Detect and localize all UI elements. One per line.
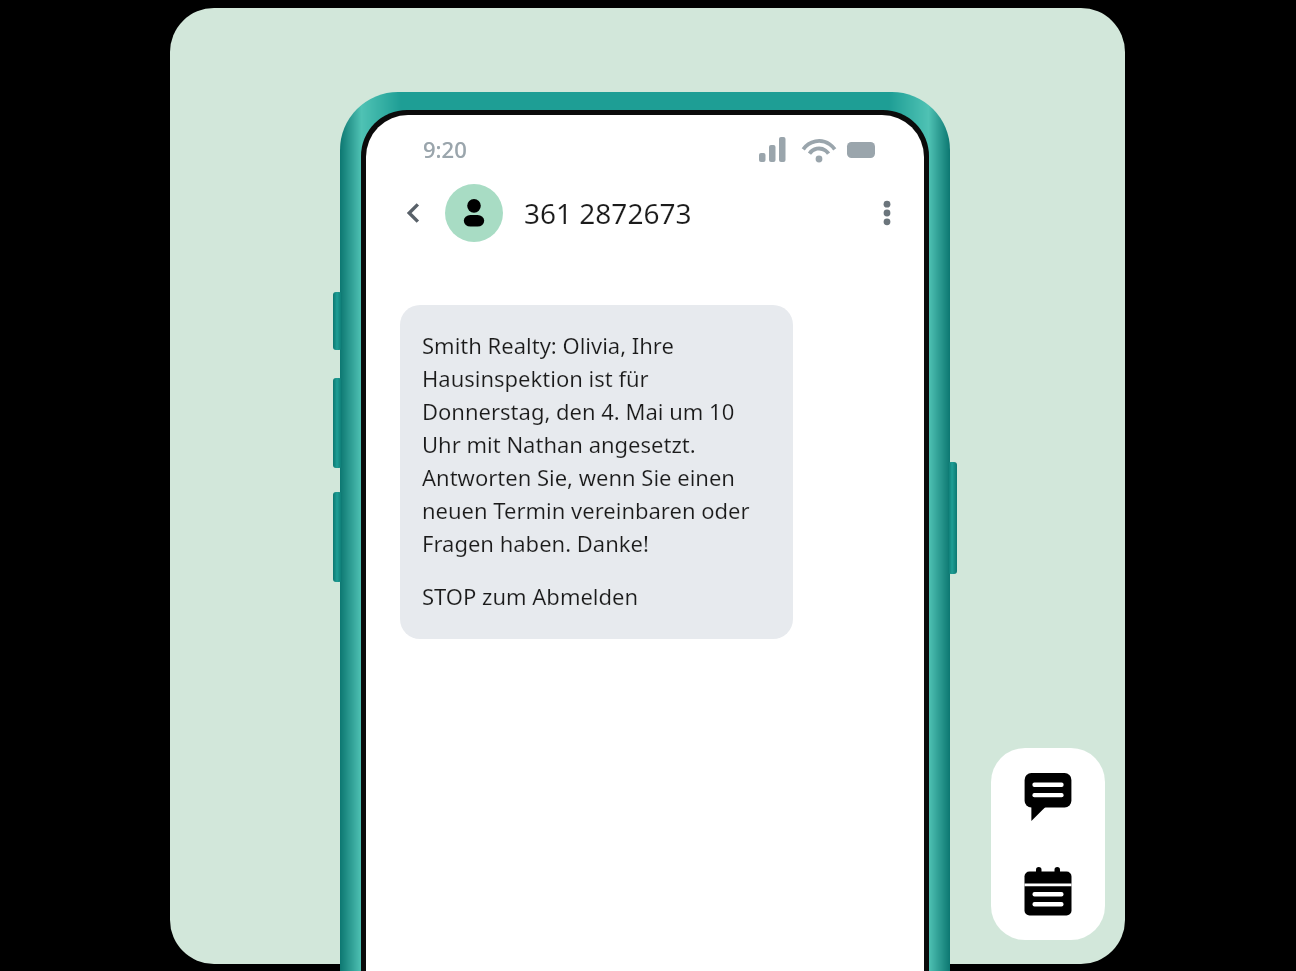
button[interactable]: Smith Realty: Olivia, Ihre Hausinspektio… — [400, 305, 793, 639]
button[interactable]: Messages — [991, 748, 1105, 844]
button[interactable]: More options — [862, 188, 912, 238]
button[interactable]: Back — [392, 191, 436, 235]
button[interactable]: Calendar — [991, 844, 1105, 940]
button[interactable]: Contact avatar — [445, 184, 503, 242]
staticText: Smith Realty: Olivia, Ihre Hausinspektio… — [422, 330, 777, 559]
staticText: 361 2872673 — [524, 194, 692, 232]
staticText: 9:20 — [423, 134, 467, 164]
staticText: STOP zum Abmelden — [422, 581, 639, 611]
